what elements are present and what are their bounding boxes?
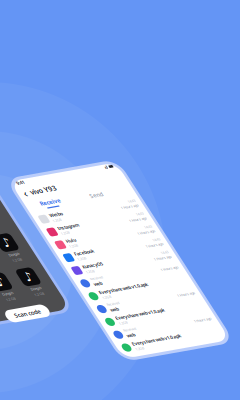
staticText: Everyshare web v1.0.apk — [28, 321, 88, 328]
button[interactable]: Receive — [10, 209, 66, 221]
staticText: Received — [28, 305, 43, 310]
button[interactable]: Back — [14, 195, 19, 203]
staticText: 1 Hours ago — [112, 373, 133, 378]
staticText: 1 Hours ago — [112, 309, 133, 314]
button[interactable]: Received — [8, 304, 139, 320]
button[interactable]: Instagram — [8, 240, 139, 256]
staticText: KunacyOS — [28, 289, 53, 296]
staticText: 1.2GB — [28, 249, 39, 254]
button[interactable]: Received — [8, 336, 139, 352]
button[interactable]: Facebook — [8, 272, 139, 288]
staticText: 9:41 — [14, 182, 24, 189]
button[interactable]: Received — [8, 368, 139, 384]
staticText: Hulu — [28, 257, 40, 264]
staticText: Weibo — [28, 225, 44, 232]
button[interactable]: Everyshare web v1.0.apk — [8, 384, 139, 400]
staticText: 1 Hours ago — [112, 341, 133, 346]
button[interactable]: Weibo — [8, 224, 139, 240]
staticText: Instagram — [28, 241, 54, 248]
staticText: Facebook — [28, 273, 52, 280]
button[interactable]: Everyshare web v1.0.apk — [8, 352, 139, 368]
button[interactable]: Hulu — [8, 256, 139, 272]
staticText: vivo Y93 — [23, 193, 55, 204]
button[interactable]: Everyshare web v1.0.apk — [8, 320, 139, 336]
button[interactable]: KunacyOS — [8, 288, 139, 304]
staticText: ‹ — [15, 191, 19, 207]
staticText: web — [28, 311, 38, 318]
staticText: Receive — [26, 209, 51, 218]
staticText: 1.2GB — [28, 265, 39, 270]
staticText: 1.2GB — [28, 281, 39, 286]
